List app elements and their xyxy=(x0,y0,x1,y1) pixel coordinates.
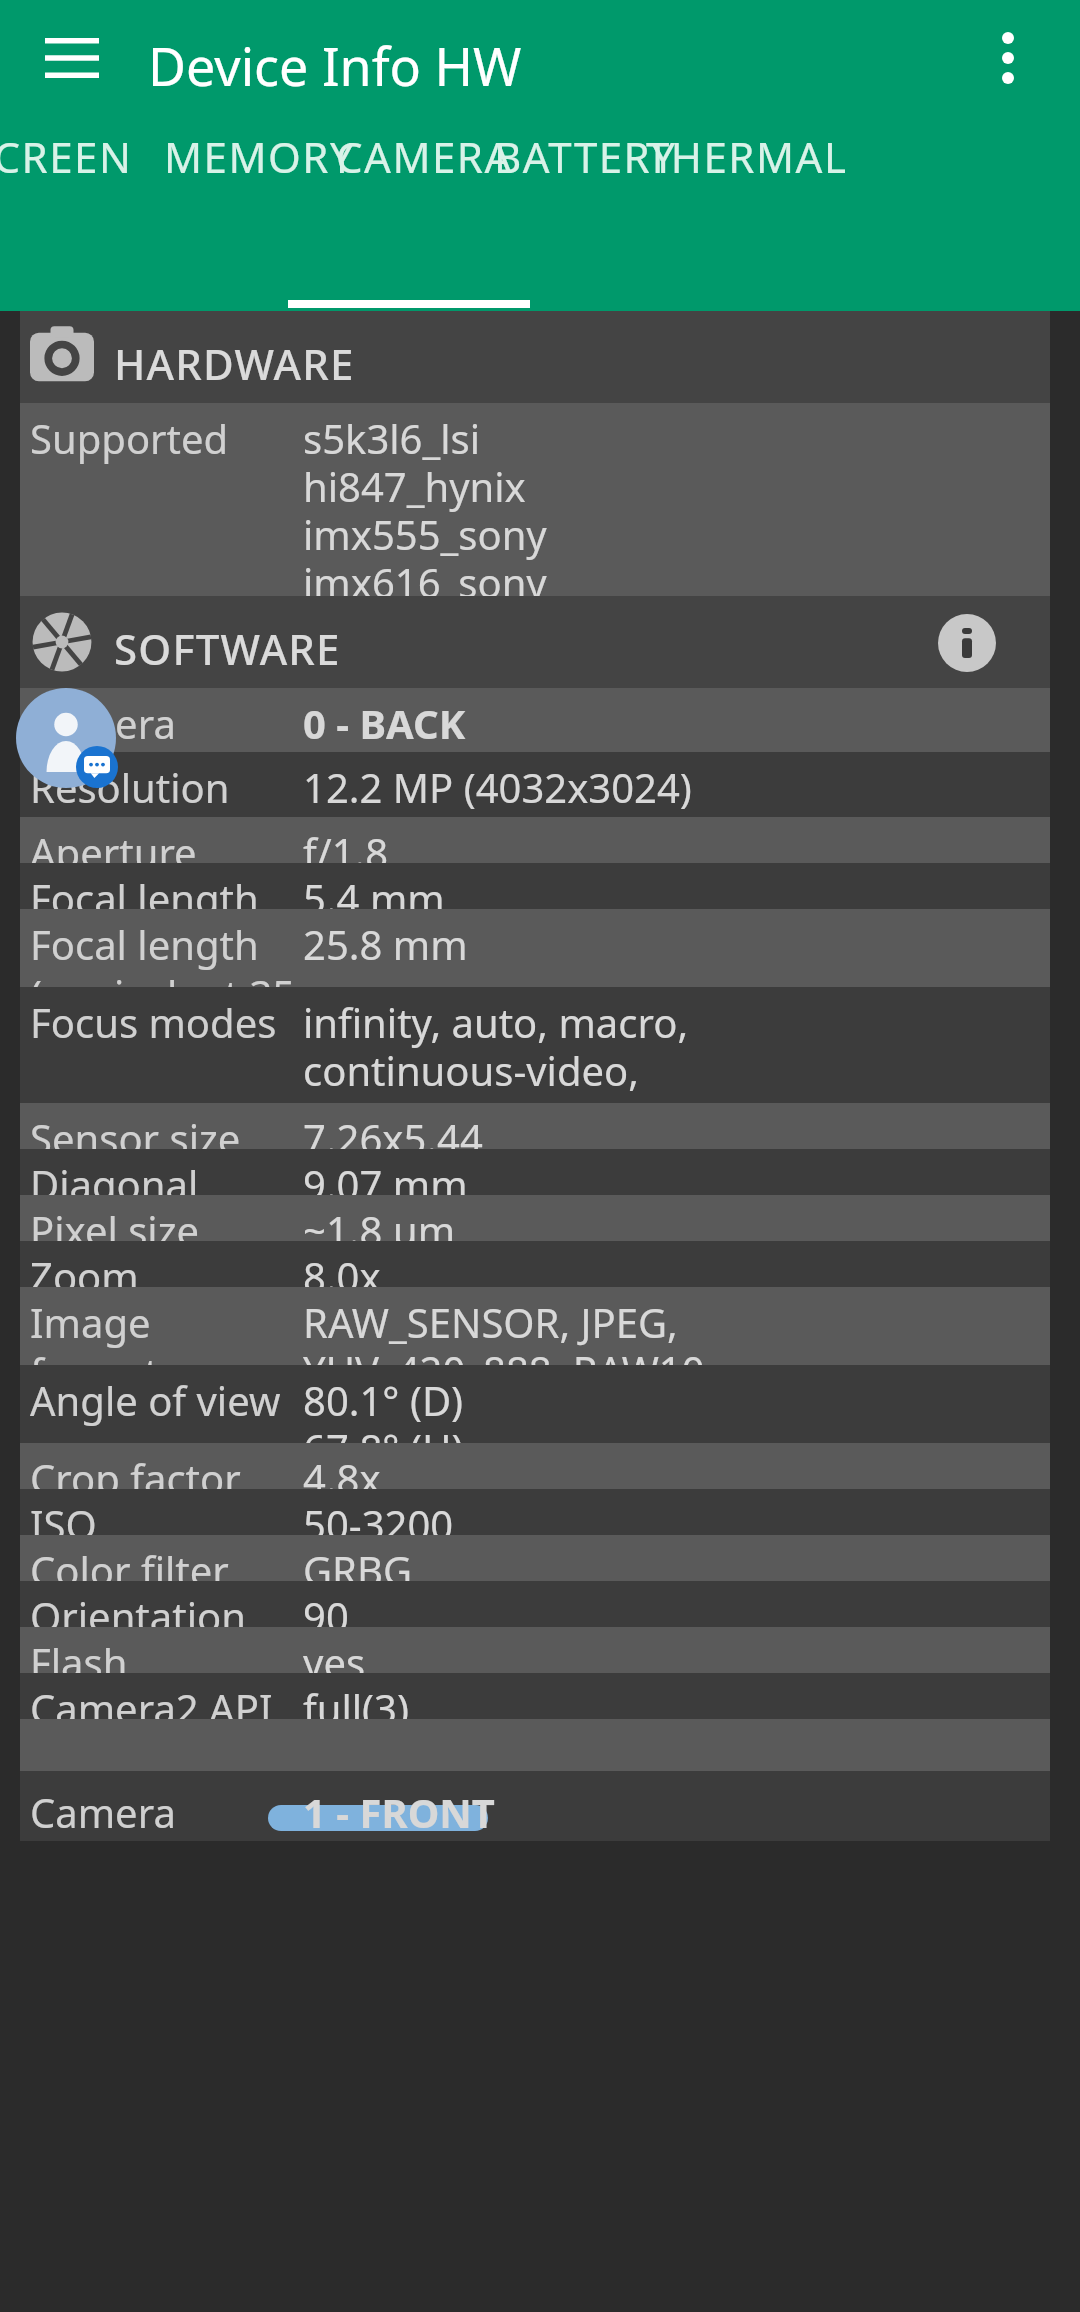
staticText: Supported xyxy=(30,411,300,465)
staticText: Focal length (equivalent 35 mm) xyxy=(30,917,300,995)
staticText: Orientation xyxy=(30,1589,300,1635)
button[interactable]: HARDWARE xyxy=(20,311,1050,403)
staticText: Camera xyxy=(30,696,300,750)
button[interactable]: SOFTWARE xyxy=(20,596,1050,688)
staticText: Zoom xyxy=(30,1249,300,1295)
staticText: 8.0x xyxy=(303,1249,1043,1295)
staticText: CAMERA xyxy=(336,128,513,185)
button[interactable]: SCREEN xyxy=(0,128,154,212)
staticText: Device Info HW xyxy=(148,30,522,101)
staticText: 9.07 mm xyxy=(303,1157,1043,1203)
button[interactable]: Flash xyxy=(20,1627,1050,1673)
staticText: 80.1° (D) 67.8° (H) xyxy=(303,1373,1043,1451)
button[interactable]: Open navigation menu xyxy=(22,22,122,94)
button[interactable]: Orientation xyxy=(20,1581,1050,1627)
staticText: MEMORY xyxy=(164,128,356,185)
button[interactable]: Chat bubble xyxy=(16,688,116,788)
staticText: yes xyxy=(303,1635,1043,1681)
staticText: Diagonal xyxy=(30,1157,300,1203)
button[interactable]: Diagonal xyxy=(20,1149,1050,1195)
staticText: Focus modes xyxy=(30,995,300,1049)
staticText: Resolution xyxy=(30,760,300,814)
button[interactable]: Sensor size xyxy=(20,1103,1050,1149)
staticText: f/1.8 xyxy=(303,825,1043,871)
button[interactable]: Crop factor xyxy=(20,1443,1050,1489)
staticText: 90 xyxy=(303,1589,1043,1635)
staticText: infinity, auto, macro, continuous-video,… xyxy=(303,995,1043,1111)
staticText: 12.2 MP (4032x3024) xyxy=(303,760,1043,814)
staticText: RAW_SENSOR, JPEG, YUV_420_888, RAW10 xyxy=(303,1295,1043,1373)
button[interactable]: ISO xyxy=(20,1489,1050,1535)
button[interactable]: Camera xyxy=(20,688,1050,752)
button[interactable]: Focus modes xyxy=(20,987,1050,1103)
button[interactable]: MEMORY xyxy=(146,128,374,212)
staticText: Flash xyxy=(30,1635,300,1681)
staticText: s5k3l6_lsi hi847_hynix imx555_sony imx61… xyxy=(303,411,1043,604)
button[interactable]: Angle of view xyxy=(20,1365,1050,1443)
button[interactable]: Zoom xyxy=(20,1241,1050,1287)
staticText: Camera xyxy=(30,1785,176,1839)
staticText: HARDWARE xyxy=(114,335,355,392)
button[interactable]: Color filter xyxy=(20,1535,1050,1581)
staticText: ISO xyxy=(30,1497,300,1543)
staticText: 50-3200 xyxy=(303,1497,1043,1543)
staticText: Focal length xyxy=(30,871,300,917)
button[interactable]: Focal length xyxy=(20,863,1050,909)
button[interactable]: Resolution xyxy=(20,752,1050,817)
staticText: Color filter xyxy=(30,1543,300,1589)
button[interactable]: Pixel size xyxy=(20,1195,1050,1241)
button[interactable]: Supported xyxy=(20,403,1050,596)
staticText: BATTERY xyxy=(494,128,677,185)
staticText: Sensor size xyxy=(30,1111,300,1157)
staticText: ~1.8 µm xyxy=(303,1203,1043,1249)
staticText: Crop factor xyxy=(30,1451,300,1497)
staticText: Camera2 API xyxy=(30,1681,300,1727)
staticText: Aperture xyxy=(30,825,300,871)
staticText: 5.4 mm xyxy=(303,871,1043,917)
staticText: 4.8x xyxy=(303,1451,1043,1497)
staticText: full(3) xyxy=(303,1681,1043,1727)
staticText: Image formats xyxy=(30,1295,300,1373)
button[interactable]: Info xyxy=(938,614,996,672)
staticText: 7.26x5.44 xyxy=(303,1111,1043,1157)
button[interactable]: More options xyxy=(960,22,1056,94)
staticText: SCREEN xyxy=(0,128,133,185)
button[interactable]: BATTERY xyxy=(472,128,698,212)
staticText: Angle of view xyxy=(30,1373,300,1427)
staticText: THERMAL xyxy=(646,128,848,185)
button[interactable]: Image formats xyxy=(20,1287,1050,1365)
button[interactable]: THERMAL xyxy=(632,128,862,212)
button[interactable]: Aperture xyxy=(20,817,1050,863)
staticText: SOFTWARE xyxy=(114,620,341,677)
staticText: 25.8 mm xyxy=(303,917,1043,971)
button[interactable]: Focal length (equivalent 35 mm) xyxy=(20,909,1050,987)
button[interactable]: CAMERA xyxy=(312,128,536,212)
staticText: Pixel size xyxy=(30,1203,300,1249)
staticText: GRBG xyxy=(303,1543,1043,1589)
staticText: 1 - FRONT xyxy=(303,1785,495,1839)
staticText: 0 - BACK xyxy=(303,696,1043,750)
button[interactable]: Camera2 API xyxy=(20,1673,1050,1719)
